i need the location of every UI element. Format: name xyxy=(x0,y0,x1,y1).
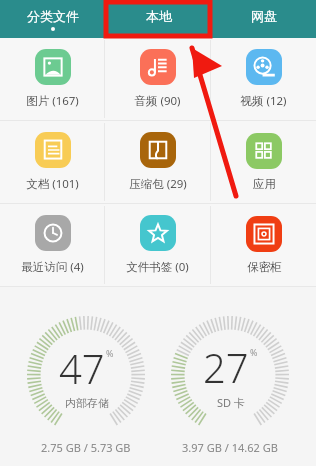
staticText: 文档 (101) xyxy=(26,176,79,192)
button[interactable]: 分类文件 xyxy=(0,0,106,38)
button[interactable]: 应用 xyxy=(211,121,316,203)
staticText: 文件书签 (0) xyxy=(126,259,189,275)
staticText: 47 xyxy=(59,341,105,395)
staticText: SD 卡 xyxy=(217,395,245,410)
button[interactable]: 保密柜 xyxy=(211,204,316,286)
button[interactable]: 最近访问 (4) xyxy=(0,204,104,286)
staticText: 视频 (12) xyxy=(240,93,287,109)
staticText: % xyxy=(106,347,114,359)
staticText: 应用 xyxy=(253,177,276,191)
staticText: % xyxy=(250,346,258,358)
staticText: 网盘 xyxy=(251,8,277,24)
button[interactable]: 音频 (90) xyxy=(105,38,210,120)
staticText: 3.97 GB / 14.62 GB xyxy=(182,440,278,455)
staticText: 最近访问 (4) xyxy=(21,259,84,275)
button[interactable]: 本地 xyxy=(106,0,211,38)
staticText: 图片 (167) xyxy=(26,93,79,109)
button[interactable]: 文件书签 (0) xyxy=(105,204,210,286)
staticText: 2.75 GB / 5.73 GB xyxy=(41,440,131,455)
button[interactable]: 图片 (167) xyxy=(0,38,104,120)
button[interactable]: 视频 (12) xyxy=(211,38,316,120)
staticText: 压缩包 (29) xyxy=(129,176,187,192)
staticText: 本地 xyxy=(146,8,172,24)
button[interactable]: 压缩包 (29) xyxy=(105,121,210,203)
staticText: 内部存储 xyxy=(65,396,109,410)
staticText: 音频 (90) xyxy=(134,93,181,109)
staticText: 分类文件 xyxy=(27,8,79,24)
staticText: 27 xyxy=(203,340,249,394)
button[interactable]: 网盘 xyxy=(211,0,316,38)
staticText: 保密柜 xyxy=(247,260,282,274)
button[interactable]: 文档 (101) xyxy=(0,121,104,203)
